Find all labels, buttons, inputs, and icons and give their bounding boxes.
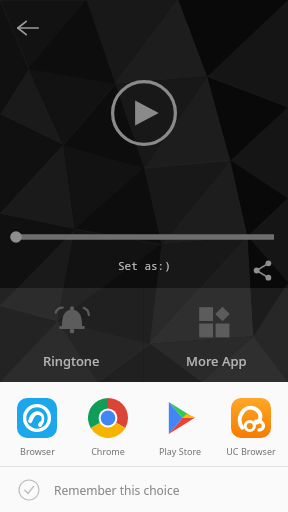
button[interactable]: UC Browser: [217, 398, 285, 457]
button[interactable]: Chrome: [74, 398, 142, 457]
staticText: Set as:): [118, 258, 171, 273]
staticText: Browser: [20, 445, 55, 457]
button[interactable]: Play Store: [146, 398, 214, 457]
button[interactable]: Browser: [3, 398, 71, 457]
button[interactable]: Seek bar: [0, 226, 288, 248]
button[interactable]: Share: [244, 252, 280, 288]
staticText: UC Browser: [226, 445, 276, 457]
button[interactable]: More App: [144, 288, 288, 382]
staticText: More App: [186, 352, 247, 370]
staticText: Ringtone: [43, 352, 100, 370]
button[interactable]: Ringtone: [0, 288, 143, 382]
button[interactable]: Play: [110, 79, 178, 147]
staticText: Play Store: [159, 445, 201, 457]
staticText: Remember this choice: [54, 482, 180, 498]
button[interactable]: Back: [10, 10, 46, 46]
staticText: Chrome: [91, 445, 125, 457]
button[interactable]: Remember this choice: [0, 467, 288, 512]
